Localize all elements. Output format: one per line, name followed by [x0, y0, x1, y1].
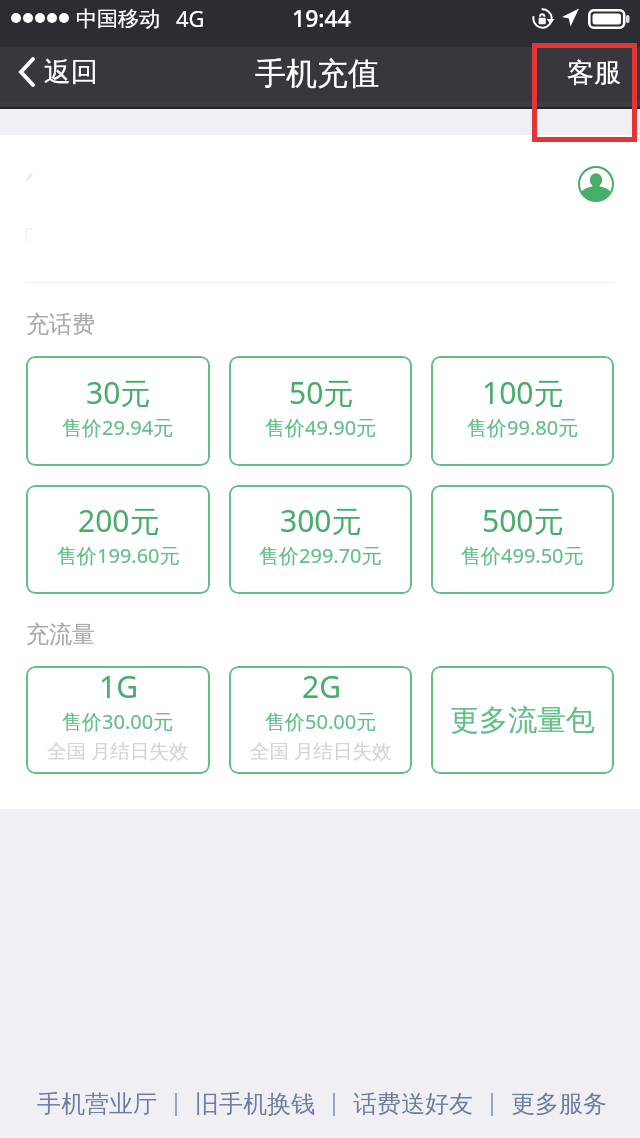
- button[interactable]: 500元: [431, 485, 614, 594]
- staticText: 售价49.90元: [265, 414, 377, 441]
- staticText: 手机充值: [255, 54, 379, 93]
- staticText: 全国 月结日失效: [250, 737, 392, 764]
- staticText: 300元: [280, 500, 362, 541]
- button[interactable]: 30元: [26, 356, 210, 466]
- staticText: 售价30.00元: [62, 708, 174, 735]
- staticText: 2G: [302, 666, 341, 707]
- staticText: 4G: [176, 3, 205, 33]
- staticText: 售价29.94元: [62, 414, 174, 441]
- button[interactable]: 50元: [229, 356, 412, 466]
- staticText: 售价99.80元: [467, 414, 579, 441]
- staticText: 中国移动: [76, 6, 160, 32]
- button[interactable]: 300元: [229, 485, 412, 594]
- staticText: 旧手机换钱: [195, 1089, 315, 1119]
- button[interactable]: 100元: [431, 356, 614, 466]
- button[interactable]: 更多服务: [493, 1078, 625, 1130]
- button[interactable]: 客服: [546, 47, 640, 99]
- staticText: 客服: [567, 56, 621, 90]
- staticText: 售价50.00元: [265, 708, 377, 735]
- staticText: 19:44: [292, 2, 351, 33]
- button[interactable]: 手机营业厅: [19, 1078, 175, 1130]
- staticText: 1G: [99, 666, 138, 707]
- staticText: 200元: [78, 500, 160, 541]
- staticText: 售价499.50元: [461, 542, 584, 569]
- staticText: 全国 月结日失效: [47, 737, 189, 764]
- button[interactable]: 话费送好友: [335, 1078, 491, 1130]
- staticText: 50元: [289, 372, 354, 413]
- staticText: 100元: [482, 372, 564, 413]
- staticText: 更多流量包: [450, 702, 595, 739]
- button[interactable]: 旧手机换钱: [177, 1078, 333, 1130]
- staticText: 充流量: [26, 620, 95, 649]
- button[interactable]: 1G: [26, 666, 210, 774]
- button[interactable]: 更多流量包: [431, 666, 614, 774]
- staticText: 更多服务: [511, 1089, 607, 1119]
- staticText: 返回: [44, 55, 98, 89]
- staticText: 500元: [482, 500, 564, 541]
- staticText: 手机营业厅: [37, 1089, 157, 1119]
- staticText: 30元: [86, 372, 151, 413]
- button[interactable]: 返回: [8, 51, 108, 95]
- staticText: 话费送好友: [353, 1089, 473, 1119]
- button[interactable]: 200元: [26, 485, 210, 594]
- button[interactable]: 2G: [229, 666, 412, 774]
- button[interactable]: Account: [578, 166, 614, 202]
- staticText: 售价199.60元: [57, 542, 180, 569]
- staticText: 充话费: [26, 310, 95, 339]
- staticText: 售价299.70元: [259, 542, 382, 569]
